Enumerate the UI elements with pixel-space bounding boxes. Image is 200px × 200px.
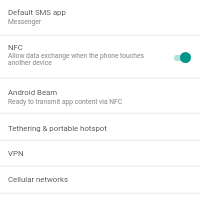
staticText: Messenger <box>8 18 42 26</box>
staticText: NFC <box>8 43 23 52</box>
staticText: Allow data exchange when the phone touch… <box>8 52 144 60</box>
staticText: VPN <box>8 149 24 158</box>
staticText: Android Beam <box>8 88 58 97</box>
button[interactable]: Android Beam <box>0 79 200 113</box>
button[interactable]: Default SMS app <box>0 0 200 35</box>
staticText: another device <box>8 59 52 67</box>
staticText: Tethering & portable hotspot <box>8 124 107 133</box>
staticText: Ready to transmit app content via NFC <box>8 98 123 106</box>
button[interactable]: NFC on/off toggle <box>171 51 192 64</box>
button[interactable]: Cellular networks <box>0 167 200 193</box>
button[interactable]: Tethering & portable hotspot <box>0 114 200 140</box>
button[interactable]: VPN <box>0 141 200 167</box>
staticText: Default SMS app <box>8 8 66 17</box>
button[interactable]: NFC <box>0 36 200 78</box>
staticText: Cellular networks <box>8 175 68 184</box>
